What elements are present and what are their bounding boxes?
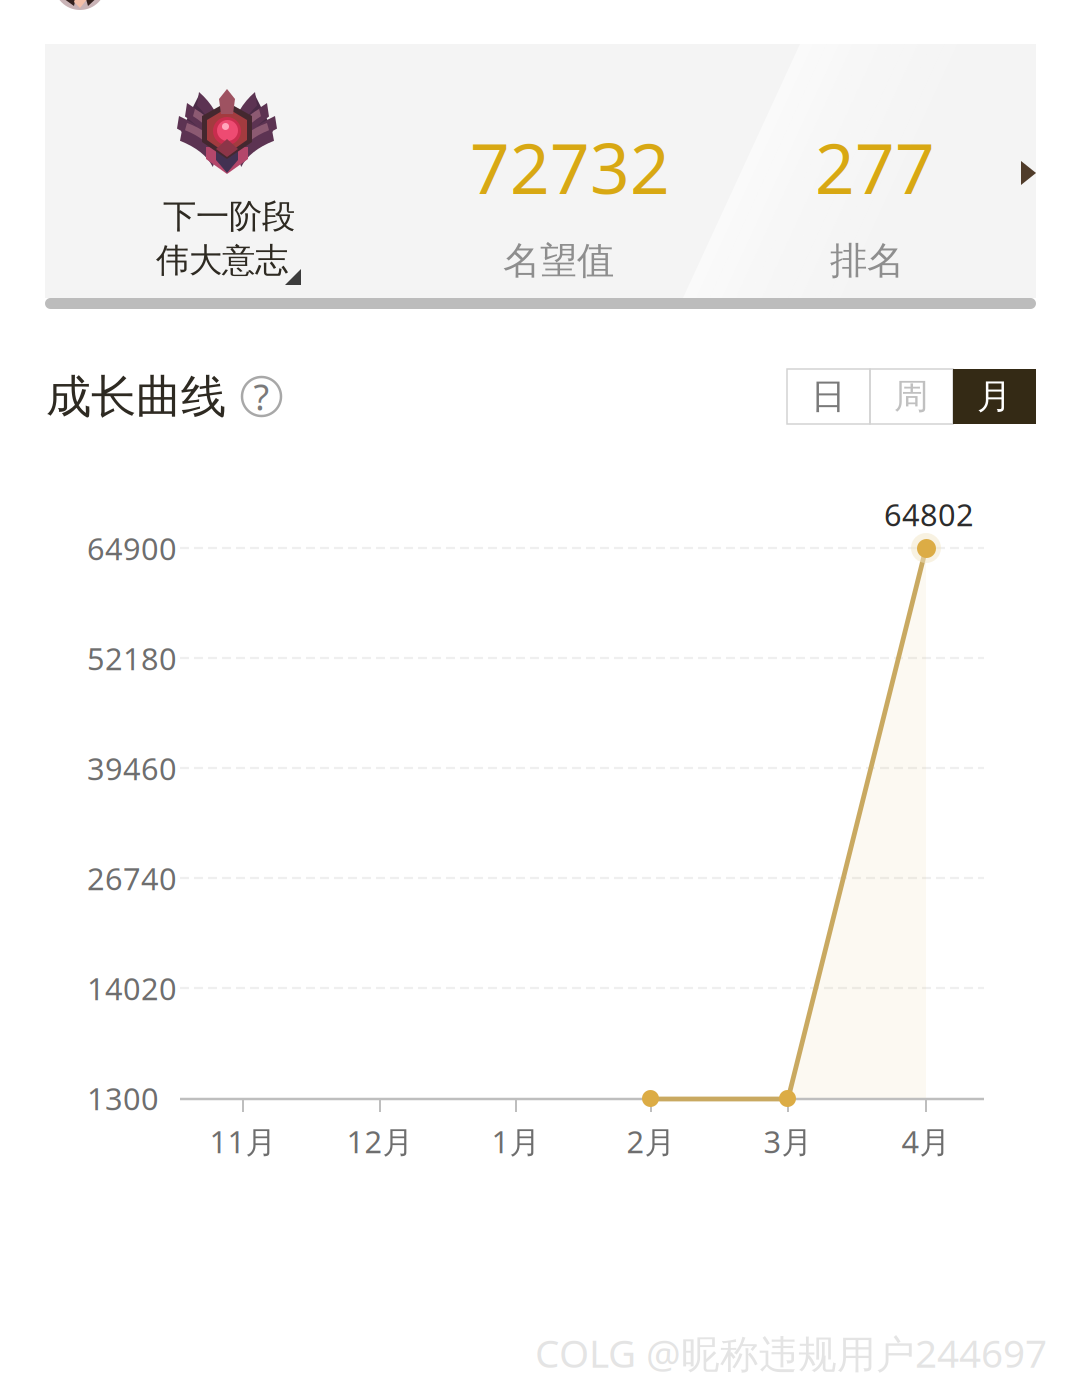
staticText: 名望值 xyxy=(503,238,614,284)
staticText: 1300 xyxy=(87,1078,159,1119)
staticText: 3月 xyxy=(763,1121,812,1162)
button[interactable]: 周 xyxy=(870,369,953,424)
staticText: 日 xyxy=(811,375,846,418)
staticText: 26740 xyxy=(87,858,177,899)
staticText: 12月 xyxy=(346,1121,413,1162)
staticText: 成长曲线 xyxy=(46,369,226,425)
staticText: 39460 xyxy=(87,748,177,789)
staticText: 周 xyxy=(894,375,929,418)
staticText: 72732 xyxy=(470,121,670,213)
button[interactable]: Profile picture xyxy=(54,0,106,10)
button[interactable]: 月 xyxy=(953,369,1036,424)
button[interactable]: About the growth curve xyxy=(242,377,281,416)
staticText: 下一阶段 xyxy=(163,196,295,237)
staticText: 排名 xyxy=(830,238,904,284)
staticText: 伟大意志 xyxy=(156,240,288,281)
staticText: 月 xyxy=(977,375,1012,418)
button[interactable]: 日 xyxy=(787,369,870,424)
staticText: 2月 xyxy=(626,1121,675,1162)
staticText: 1月 xyxy=(491,1121,540,1162)
button[interactable]: 下一阶段 xyxy=(45,44,1036,298)
staticText: 64900 xyxy=(87,528,177,569)
staticText: 64802 xyxy=(884,494,974,535)
staticText: 11月 xyxy=(209,1121,276,1162)
staticText: 52180 xyxy=(87,638,177,679)
staticText: COLG @昵称违规用户244697 xyxy=(535,1327,1047,1378)
staticText: 14020 xyxy=(87,968,177,1009)
staticText: 4月 xyxy=(901,1121,950,1162)
staticText: 277 xyxy=(815,121,935,213)
staticText: ? xyxy=(253,373,269,420)
